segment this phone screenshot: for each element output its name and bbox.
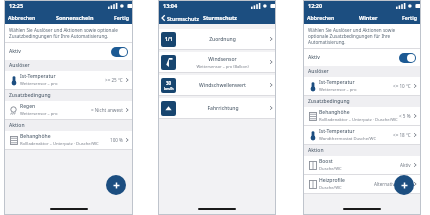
button[interactable]: Hinzufügen [394,175,414,195]
button[interactable]: Boost [303,156,421,174]
button[interactable]: 1/1 [158,29,276,49]
staticText: Rollladenaktor – Unterputz · Dusche/WC [20,141,99,147]
staticText: Zuordnung [209,36,236,43]
staticText: Sonnenschein [56,14,94,21]
staticText: Wettersensor – pro (Balkon) [196,64,249,69]
staticText: 13:04 [163,2,178,9]
staticText: km/h [164,86,174,91]
staticText: 100 % [110,137,123,143]
button[interactable]: Aktiv [111,47,128,57]
button[interactable]: Abbrechen [307,14,335,21]
staticText: Wählen Sie Auslöser und Aktionen sowie o… [308,27,415,45]
button[interactable]: Ist-Temperatur [303,77,421,95]
staticText: Dusche/WC [319,185,342,191]
button[interactable]: 30 [158,75,276,95]
button[interactable]: Behanghöhe [303,107,421,125]
staticText: Wandthermostat Dusche/WC [319,136,377,142]
staticText: >= 25 °C [105,77,123,83]
staticText: Zusatzbedingung [308,98,350,105]
staticText: Behanghöhe [20,133,51,140]
button[interactable]: Ist-Temperatur [4,71,133,89]
staticText: Aktion [308,147,324,154]
staticText: 1/1 [165,36,173,43]
staticText: Fahrrichtung [207,105,239,112]
button[interactable]: Fertig [402,14,417,21]
button[interactable]: Abbrechen [8,14,36,21]
staticText: <= 10 °C [393,83,411,89]
staticText: 12:20 [308,2,323,9]
button[interactable]: Behanghöhe [4,131,133,149]
staticText: Heizprofile [319,177,345,184]
staticText: Rollladenaktor – Unterputz · Dusche/WC [319,117,398,123]
staticText: Aktiv [400,162,411,168]
staticText: = Nicht anwest [91,107,123,113]
staticText: Boost [319,158,333,165]
staticText: Auslöser [9,62,30,69]
staticText: < 5 % [399,113,411,119]
staticText: Aktiv [9,48,21,55]
button[interactable]: Fertig [114,14,129,21]
button[interactable]: Aktiv [399,53,416,63]
staticText: Windschwellenwert [199,82,246,89]
button[interactable]: Hinzufügen [106,175,126,195]
staticText: Aktiv [308,54,320,61]
staticText: Windsensor [208,56,237,63]
staticText: Regen [20,103,36,110]
button[interactable]: Windsensor [158,52,276,72]
staticText: Sturmschutz [203,14,237,21]
staticText: 30 [166,80,172,86]
button[interactable]: Regen [4,101,133,119]
staticText: Zusatzbedingung [9,92,51,99]
button[interactable]: Back [161,14,199,22]
staticText: Behanghöhe [319,109,350,116]
staticText: Wettersensor – pro [319,87,357,93]
staticText: <= 18 °C [393,132,411,138]
staticText: 12:25 [9,2,24,9]
staticText: Fertig [402,14,417,21]
staticText: Ist-Temperatur [319,79,355,86]
staticText: Aktion [9,122,25,129]
staticText: Alternativprofil 1 [374,181,411,187]
button[interactable]: Heizprofile [303,175,421,193]
staticText: Winter [359,14,378,21]
staticText: Wettersensor – pro [20,81,58,87]
staticText: Abbrechen [307,14,335,21]
button[interactable]: Fahrrichtung [158,98,276,118]
staticText: Auslöser [308,68,329,75]
button[interactable]: Ist-Temperatur [303,126,421,144]
staticText: Wählen Sie Auslöser und Aktionen sowie o… [9,27,127,39]
staticText: Wettersensor – pro [20,111,58,117]
staticText: Sturmschutz [167,15,199,22]
staticText: Dusche/WC [319,166,342,172]
staticText: Ist-Temperatur [20,73,56,80]
staticText: Ist-Temperatur [319,128,355,135]
staticText: Fertig [114,14,129,21]
staticText: Abbrechen [8,14,36,21]
